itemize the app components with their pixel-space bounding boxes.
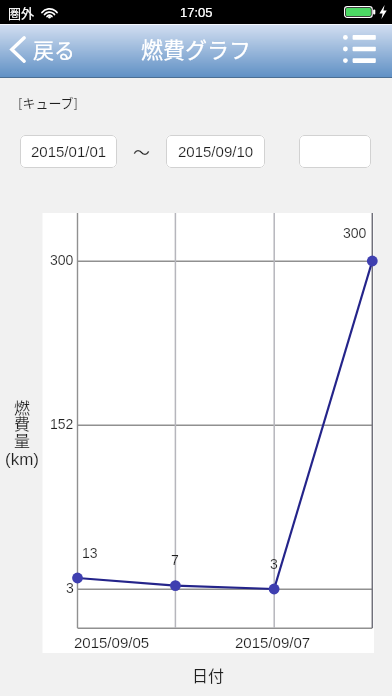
staticText: 17:05 [180, 5, 213, 20]
staticText: 7 [171, 552, 179, 568]
button[interactable]: 2015/01/01 [20, 135, 117, 168]
staticText: 13 [82, 545, 98, 561]
staticText: 燃 [14, 395, 31, 418]
button[interactable]: 戻る [10, 27, 75, 71]
staticText: (km) [5, 450, 39, 469]
staticText: 300 [343, 225, 367, 241]
staticText: 2015/09/07 [235, 634, 311, 651]
staticText: 2015/09/05 [74, 634, 150, 651]
staticText: 戻る [33, 34, 75, 64]
staticText: 燃費グラフ [141, 32, 252, 64]
staticText: 〜 [133, 139, 150, 164]
staticText: 量 [14, 428, 31, 451]
staticText: 日付 [192, 663, 225, 686]
button[interactable]: 2015/09/10 [166, 135, 265, 168]
staticText: 圏外 [8, 3, 35, 22]
staticText: 費 [14, 411, 31, 434]
staticText: 3 [270, 556, 278, 572]
button[interactable]: メニュー [343, 34, 374, 64]
staticText: 152 [50, 416, 74, 432]
staticText: 3 [66, 580, 74, 596]
button[interactable] [299, 135, 371, 168]
staticText: 300 [50, 252, 74, 268]
staticText: 2015/09/10 [178, 143, 254, 160]
staticText: 2015/01/01 [31, 143, 107, 160]
staticText: [キューブ] [18, 93, 79, 112]
